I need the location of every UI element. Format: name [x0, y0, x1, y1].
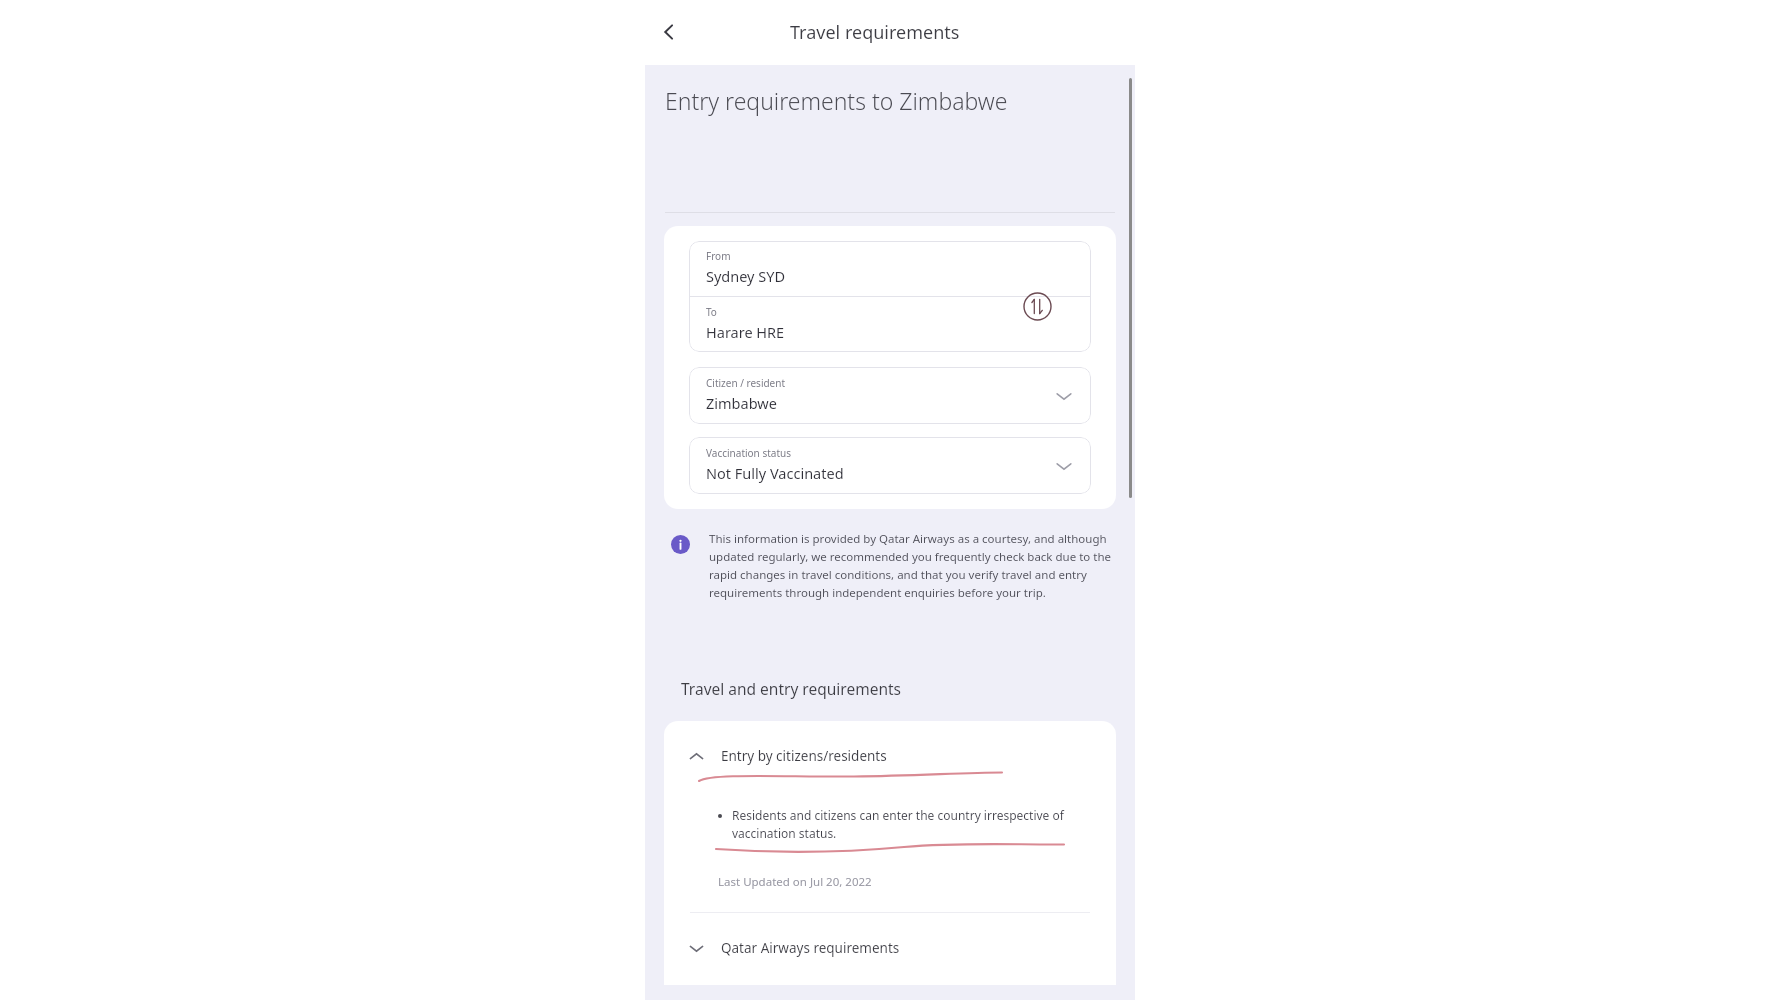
button[interactable]: Back	[645, 8, 693, 56]
staticText: Sydney SYD	[706, 266, 786, 286]
staticText: From	[706, 249, 731, 263]
button[interactable]: Qatar Airways requirements	[664, 913, 1116, 985]
staticText: Not Fully Vaccinated	[706, 463, 844, 483]
button[interactable]: From	[689, 241, 1091, 296]
button[interactable]: To	[689, 297, 1091, 352]
staticText: To	[706, 305, 717, 319]
staticText: Residents and citizens can enter the cou…	[732, 807, 1090, 842]
staticText: Vaccination status	[706, 446, 791, 460]
staticText: Qatar Airways requirements	[721, 939, 900, 957]
button[interactable]: Citizen / resident	[689, 367, 1091, 424]
staticText: Harare HRE	[706, 322, 785, 342]
staticText: Last Updated on Jul 20, 2022	[718, 874, 872, 890]
staticText: Entry by citizens/residents	[721, 747, 887, 765]
staticText: Entry requirements to Zimbabwe	[665, 85, 1008, 116]
button[interactable]: Vaccination status	[689, 437, 1091, 494]
button[interactable]: Swap origin and destination	[1023, 292, 1052, 321]
staticText: This information is provided by Qatar Ai…	[709, 531, 1111, 600]
staticText: Zimbabwe	[706, 393, 777, 413]
button[interactable]: Entry by citizens/residents	[664, 721, 1116, 771]
staticText: Travel requirements	[790, 20, 960, 45]
staticText: Citizen / resident	[706, 376, 786, 390]
staticText: Travel and entry requirements	[681, 678, 901, 699]
